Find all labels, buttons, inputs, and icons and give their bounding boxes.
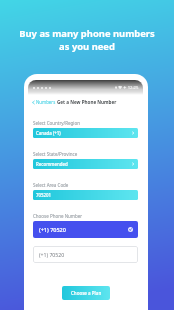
- staticText: Buy as many phone numbers as you need: [19, 27, 155, 53]
- staticText: Recommended: [36, 161, 68, 167]
- button[interactable]: (+1) 70520: [33, 246, 138, 263]
- staticText: Canada (+1): [36, 130, 61, 136]
- staticText: Get a New Phone Number: [57, 99, 117, 105]
- button[interactable]: (+1) 70520: [33, 221, 138, 238]
- button[interactable]: Canada (+1): [33, 128, 138, 138]
- button[interactable]: Choose a Plan: [62, 286, 110, 300]
- staticText: Numbers: [36, 99, 56, 105]
- staticText: 705201: [36, 192, 52, 198]
- staticText: Select Area Code: [33, 182, 69, 188]
- button[interactable]: 705201: [33, 190, 138, 200]
- staticText: (+1) 70520: [39, 251, 65, 258]
- button[interactable]: Recommended: [33, 159, 138, 169]
- button[interactable]: Numbers: [31, 99, 56, 105]
- staticText: Choose a Plan: [71, 290, 102, 296]
- staticText: Select State/Province: [33, 151, 78, 157]
- staticText: Select Country/Region: [33, 120, 81, 126]
- other: Selected: [128, 227, 133, 232]
- staticText: (+1) 70520: [39, 226, 66, 233]
- staticText: Choose Phone Number: [33, 213, 83, 219]
- staticText: ▾ ♥ ✦ 12:25: [115, 85, 139, 91]
